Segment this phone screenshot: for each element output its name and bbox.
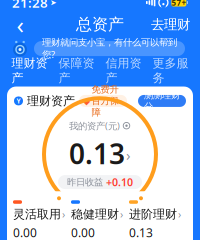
- button[interactable]: 稳健理财: [71, 200, 129, 240]
- staticText: 昨日收益: [67, 176, 103, 188]
- staticText: 去理财: [151, 16, 190, 33]
- staticText: ➤: [50, 0, 57, 7]
- staticText: ›: [178, 207, 181, 221]
- button[interactable]: 更多服务: [147, 61, 194, 83]
- button[interactable]: Assistant: [11, 37, 29, 59]
- staticText: 总资产: [76, 15, 124, 34]
- staticText: 理财资产: [27, 93, 75, 108]
- staticText: ›: [62, 207, 65, 221]
- staticText: ◆: [83, 96, 90, 106]
- button[interactable]: 灵活取用: [13, 200, 71, 240]
- staticText: 测测理财分: [144, 89, 180, 112]
- staticText: ›: [120, 95, 123, 107]
- staticText: ›: [120, 207, 123, 221]
- staticText: 免费升百万保障: [91, 84, 118, 118]
- button[interactable]: Back: [8, 13, 32, 35]
- staticText: 我的资产(元): [69, 119, 120, 132]
- button[interactable]: ◆: [79, 95, 127, 107]
- button[interactable]: 进阶理财: [129, 200, 187, 240]
- staticText: 理财资产: [11, 56, 47, 85]
- button[interactable]: 去理财: [149, 13, 192, 35]
- staticText: +0.10: [106, 175, 133, 189]
- staticText: 更多服务: [152, 56, 188, 85]
- staticText: 0.00: [71, 224, 95, 240]
- button[interactable]: 保障资产: [53, 61, 100, 83]
- button[interactable]: 理财资产: [6, 61, 53, 83]
- staticText: 0.13: [129, 224, 153, 240]
- staticText: 0.00: [13, 224, 37, 240]
- staticText: 57+: [171, 0, 186, 8]
- staticText: 21:28: [12, 0, 48, 11]
- button[interactable]: Hide amount: [122, 121, 131, 130]
- staticText: 稳健理财: [71, 207, 119, 221]
- button[interactable]: 测测理财分: [138, 95, 186, 107]
- button[interactable]: 0.13: [69, 135, 131, 172]
- staticText: 0.13: [69, 135, 125, 172]
- staticText: 理财就问支小宝，有什么可以帮到您?: [42, 37, 177, 60]
- staticText: Y: [16, 96, 20, 105]
- button[interactable]: 信用资产: [100, 61, 147, 83]
- staticText: ›: [126, 145, 131, 165]
- staticText: ‹: [16, 9, 23, 40]
- staticText: 进阶理财: [129, 207, 177, 221]
- staticText: 灵活取用: [13, 207, 61, 221]
- staticText: 信用资产: [105, 56, 141, 85]
- staticText: 保障资产: [58, 56, 94, 85]
- button[interactable]: 理财就问支小宝，有什么可以帮到您?: [34, 41, 185, 56]
- button[interactable]: 昨日收益: [58, 175, 142, 189]
